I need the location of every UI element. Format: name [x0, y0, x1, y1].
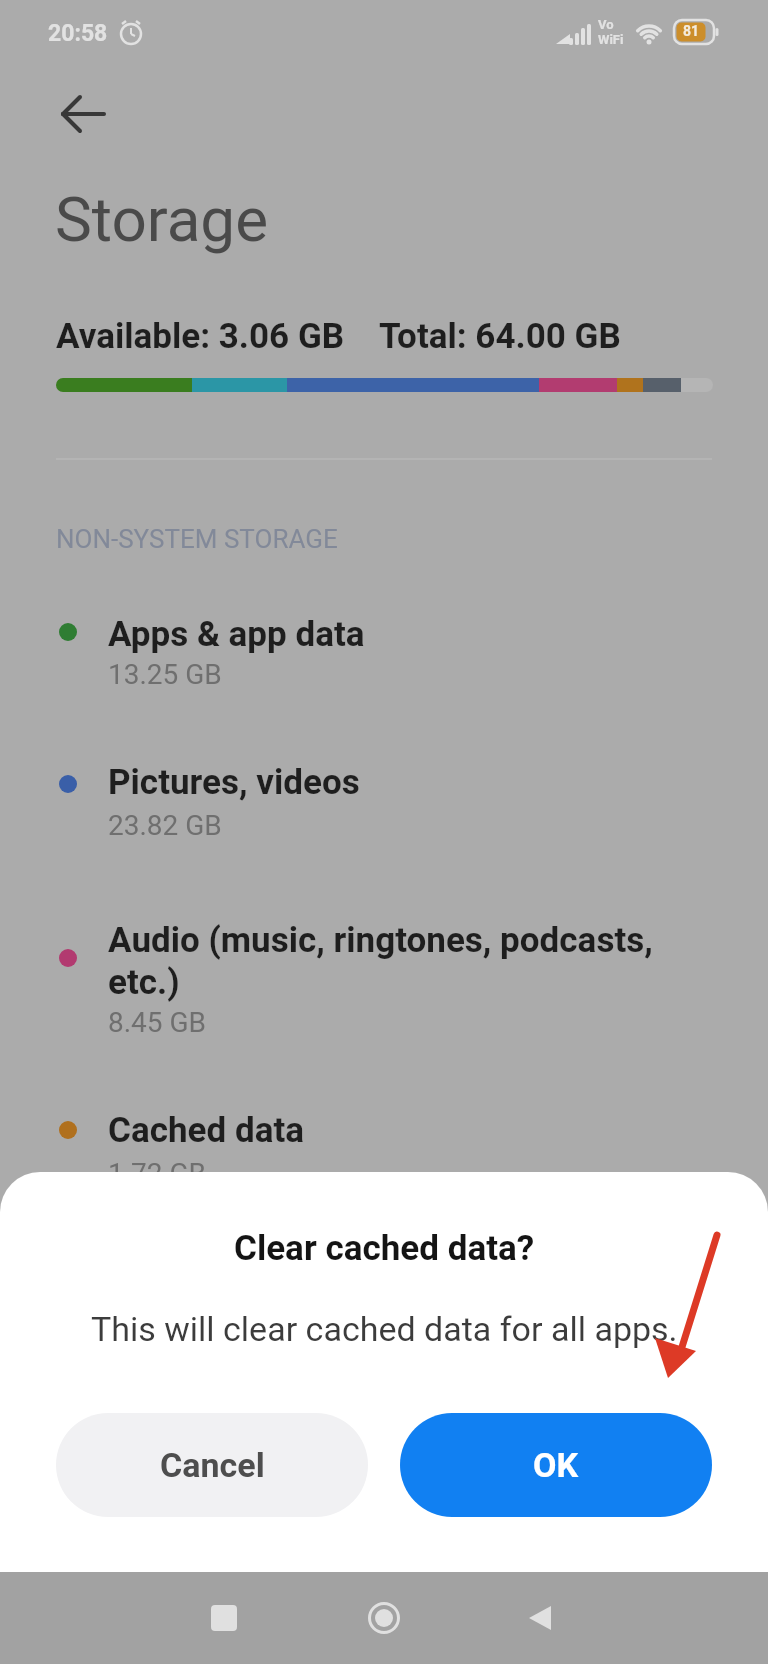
button[interactable]: OK	[400, 1413, 712, 1517]
staticText: etc.)	[108, 962, 180, 1003]
staticText: 8.45 GB	[108, 1006, 207, 1039]
button[interactable]: Cached data	[56, 1094, 712, 1214]
staticText: Cancel	[160, 1445, 265, 1485]
staticText: Vo	[598, 17, 614, 32]
staticText: 1.72 GB	[108, 1157, 207, 1190]
staticText: WiFi	[598, 32, 624, 47]
button[interactable]: Apps & app data	[56, 598, 712, 702]
staticText: Pictures, videos	[108, 762, 360, 803]
staticText: This will clear cached data for all apps…	[91, 1309, 678, 1349]
staticText: NON-SYSTEM STORAGE	[56, 524, 338, 554]
staticText: Total: 64.00 GB	[379, 316, 621, 357]
button[interactable]	[356, 1590, 412, 1646]
button[interactable]	[512, 1590, 568, 1646]
staticText: Cached data	[108, 1110, 305, 1151]
staticText: 81	[683, 23, 700, 39]
staticText: 20:58	[48, 20, 108, 47]
staticText: Clear cached data?	[234, 1228, 535, 1269]
button[interactable]: Pictures, videos	[56, 746, 712, 850]
staticText: Available: 3.06 GB	[56, 316, 345, 357]
button[interactable]: Audio (music, ringtones, podcasts,	[56, 904, 712, 1052]
staticText: OK	[533, 1445, 579, 1485]
staticText: Audio (music, ringtones, podcasts,	[108, 920, 653, 961]
button[interactable]: Cancel	[56, 1413, 368, 1517]
button[interactable]	[196, 1590, 252, 1646]
staticText: Apps & app data	[108, 614, 365, 655]
staticText: Storage	[55, 183, 269, 256]
staticText: 23.82 GB	[108, 809, 222, 842]
button[interactable]	[56, 96, 108, 136]
staticText: 13.25 GB	[108, 658, 222, 691]
